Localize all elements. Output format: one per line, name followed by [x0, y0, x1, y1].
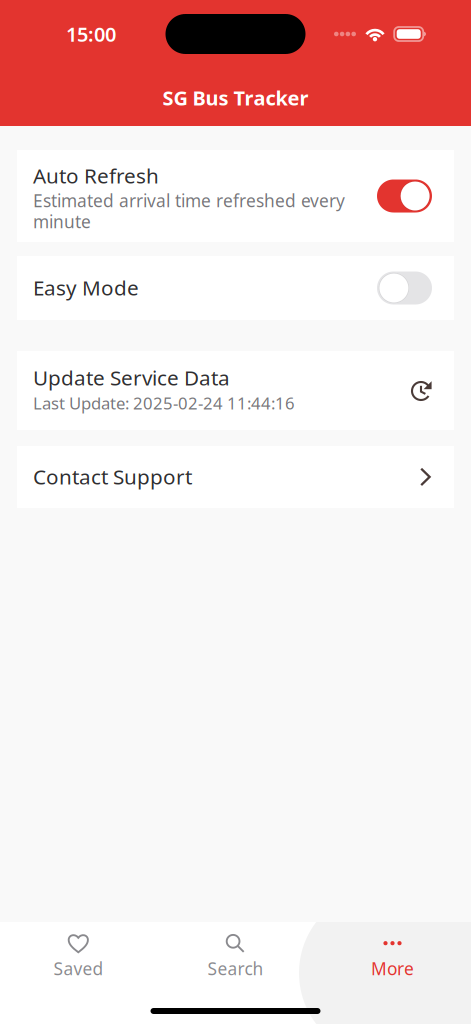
staticText: Search	[207, 957, 263, 980]
button[interactable]: More	[314, 918, 471, 989]
staticText: Auto Refresh	[33, 161, 159, 189]
staticText: 15:00	[66, 21, 116, 47]
button[interactable]: Contact Support	[17, 446, 454, 508]
button[interactable]: Saved	[0, 918, 157, 989]
staticText: More	[371, 957, 414, 980]
staticText: Last Update: 2025-02-24 11:44:16	[33, 392, 295, 414]
staticText: SG Bus Tracker	[162, 84, 308, 111]
staticText: Update Service Data	[33, 363, 230, 391]
button[interactable]: Update Service Data	[17, 351, 454, 430]
staticText: Easy Mode	[33, 273, 139, 301]
staticText: Contact Support	[33, 462, 192, 490]
staticText: Estimated arrival time refreshed every	[33, 189, 345, 212]
staticText: minute	[33, 210, 91, 233]
staticText: Saved	[53, 957, 103, 980]
button[interactable]: Search	[157, 918, 314, 989]
